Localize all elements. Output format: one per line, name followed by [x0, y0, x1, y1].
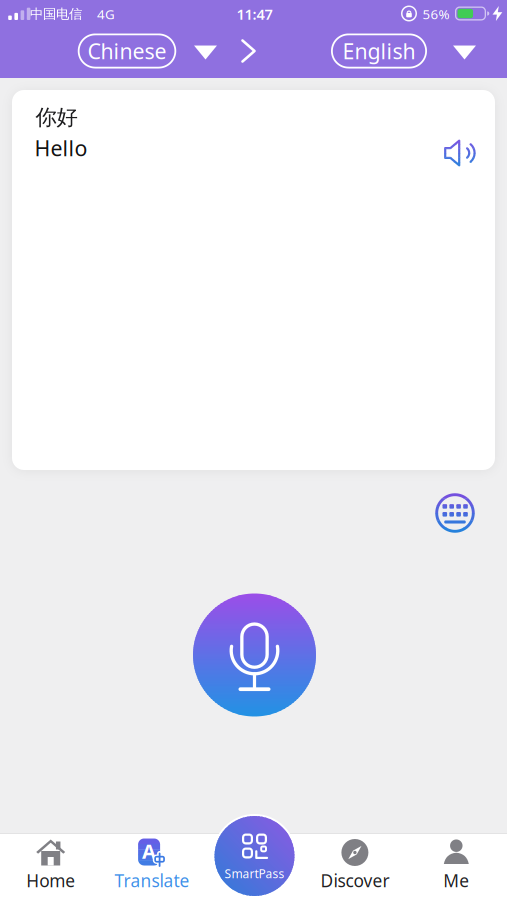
button[interactable]: English [331, 33, 427, 68]
staticText: 中国电信 [30, 6, 82, 22]
staticText: 11:47 [236, 4, 272, 24]
staticText: SmartPass [224, 865, 284, 881]
button[interactable]: Me [410, 833, 502, 895]
staticText: 4G [97, 5, 115, 23]
staticText: 56% [422, 5, 449, 23]
staticText: Me [443, 869, 469, 892]
button[interactable]: Start voice translation [193, 593, 316, 716]
staticText: Translate [115, 869, 190, 892]
button[interactable]: Speak translation [444, 139, 478, 166]
button[interactable]: A [106, 833, 198, 895]
staticText: Discover [320, 869, 389, 892]
button[interactable]: Choose target language [453, 44, 477, 60]
button[interactable]: Home [5, 833, 97, 895]
staticText: Chinese [87, 37, 166, 65]
button[interactable]: Keyboard input [433, 491, 477, 535]
staticText: Home [26, 869, 75, 892]
button[interactable]: Choose source language [194, 44, 218, 60]
button[interactable]: Swap languages [240, 38, 260, 64]
staticText: English [342, 37, 415, 65]
button[interactable]: Discover [309, 833, 401, 895]
button[interactable]: Chinese [78, 33, 176, 68]
staticText: A [142, 838, 156, 864]
button[interactable]: SmartPass [212, 814, 296, 898]
staticText: Hello [34, 134, 87, 162]
staticText: 你好 [35, 104, 77, 131]
